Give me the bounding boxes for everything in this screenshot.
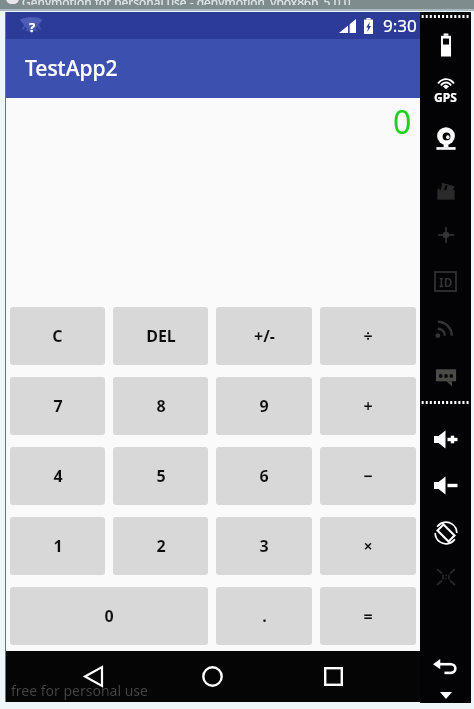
staticText: ×: [363, 535, 373, 557]
staticText: +: [363, 395, 373, 417]
button[interactable]: Device ID: [420, 264, 471, 298]
button[interactable]: Home: [190, 654, 234, 698]
staticText: ?: [29, 18, 36, 36]
button[interactable]: Messages: [420, 359, 471, 393]
button[interactable]: Volume down: [420, 468, 471, 502]
button[interactable]: 0: [10, 587, 208, 645]
button[interactable]: .: [216, 587, 312, 645]
staticText: Genymotion for personal use - genymotion…: [22, 0, 351, 5]
button[interactable]: 8: [113, 377, 208, 435]
button[interactable]: Battery: [420, 28, 471, 62]
button[interactable]: GPS: [420, 76, 471, 106]
staticText: TestApp2: [25, 54, 118, 83]
button[interactable]: 6: [216, 447, 312, 505]
staticText: 7: [53, 395, 63, 417]
button[interactable]: More: [420, 684, 471, 708]
staticText: 2: [156, 535, 166, 557]
button[interactable]: DEL: [113, 307, 208, 365]
staticText: free for personal use: [11, 681, 148, 700]
staticText: +/-: [254, 325, 275, 347]
staticText: 1: [53, 535, 63, 557]
button[interactable]: ×: [320, 517, 416, 575]
staticText: 4: [53, 465, 63, 487]
button[interactable]: TestApp2: [6, 39, 420, 98]
button[interactable]: Scale 1 to 1: [420, 560, 471, 594]
button[interactable]: Camera: [420, 121, 471, 155]
button[interactable]: 1: [10, 517, 105, 575]
button[interactable]: 3: [216, 517, 312, 575]
staticText: 5: [156, 465, 166, 487]
staticText: 9:30: [383, 14, 417, 37]
staticText: 9: [259, 395, 269, 417]
button[interactable]: Rotate: [420, 516, 471, 550]
staticText: 3: [259, 535, 269, 557]
staticText: =: [363, 605, 373, 627]
button[interactable]: Move: [420, 218, 471, 252]
button[interactable]: 5: [113, 447, 208, 505]
button[interactable]: Record video: [420, 174, 471, 208]
staticText: 0: [104, 605, 114, 627]
staticText: ÷: [363, 325, 373, 347]
button[interactable]: 2: [113, 517, 208, 575]
button[interactable]: 9: [216, 377, 312, 435]
button[interactable]: Back: [71, 654, 115, 698]
staticText: ID: [439, 274, 453, 290]
staticText: 6: [259, 465, 269, 487]
button[interactable]: ÷: [320, 307, 416, 365]
staticText: DEL: [146, 325, 176, 347]
button[interactable]: +: [320, 377, 416, 435]
button[interactable]: Back: [420, 650, 471, 684]
button[interactable]: =: [320, 587, 416, 645]
button[interactable]: C: [10, 307, 105, 365]
button[interactable]: Volume up: [420, 422, 471, 456]
staticText: .: [262, 605, 267, 627]
button[interactable]: Recent apps: [311, 654, 355, 698]
staticText: 8: [156, 395, 166, 417]
button[interactable]: 4: [10, 447, 105, 505]
button[interactable]: Network: [420, 310, 471, 344]
staticText: 0: [393, 100, 412, 144]
staticText: GPS: [434, 89, 457, 105]
button[interactable]: −: [320, 447, 416, 505]
staticText: −: [363, 465, 373, 487]
button[interactable]: +/-: [216, 307, 312, 365]
staticText: C: [52, 325, 63, 347]
button[interactable]: 7: [10, 377, 105, 435]
